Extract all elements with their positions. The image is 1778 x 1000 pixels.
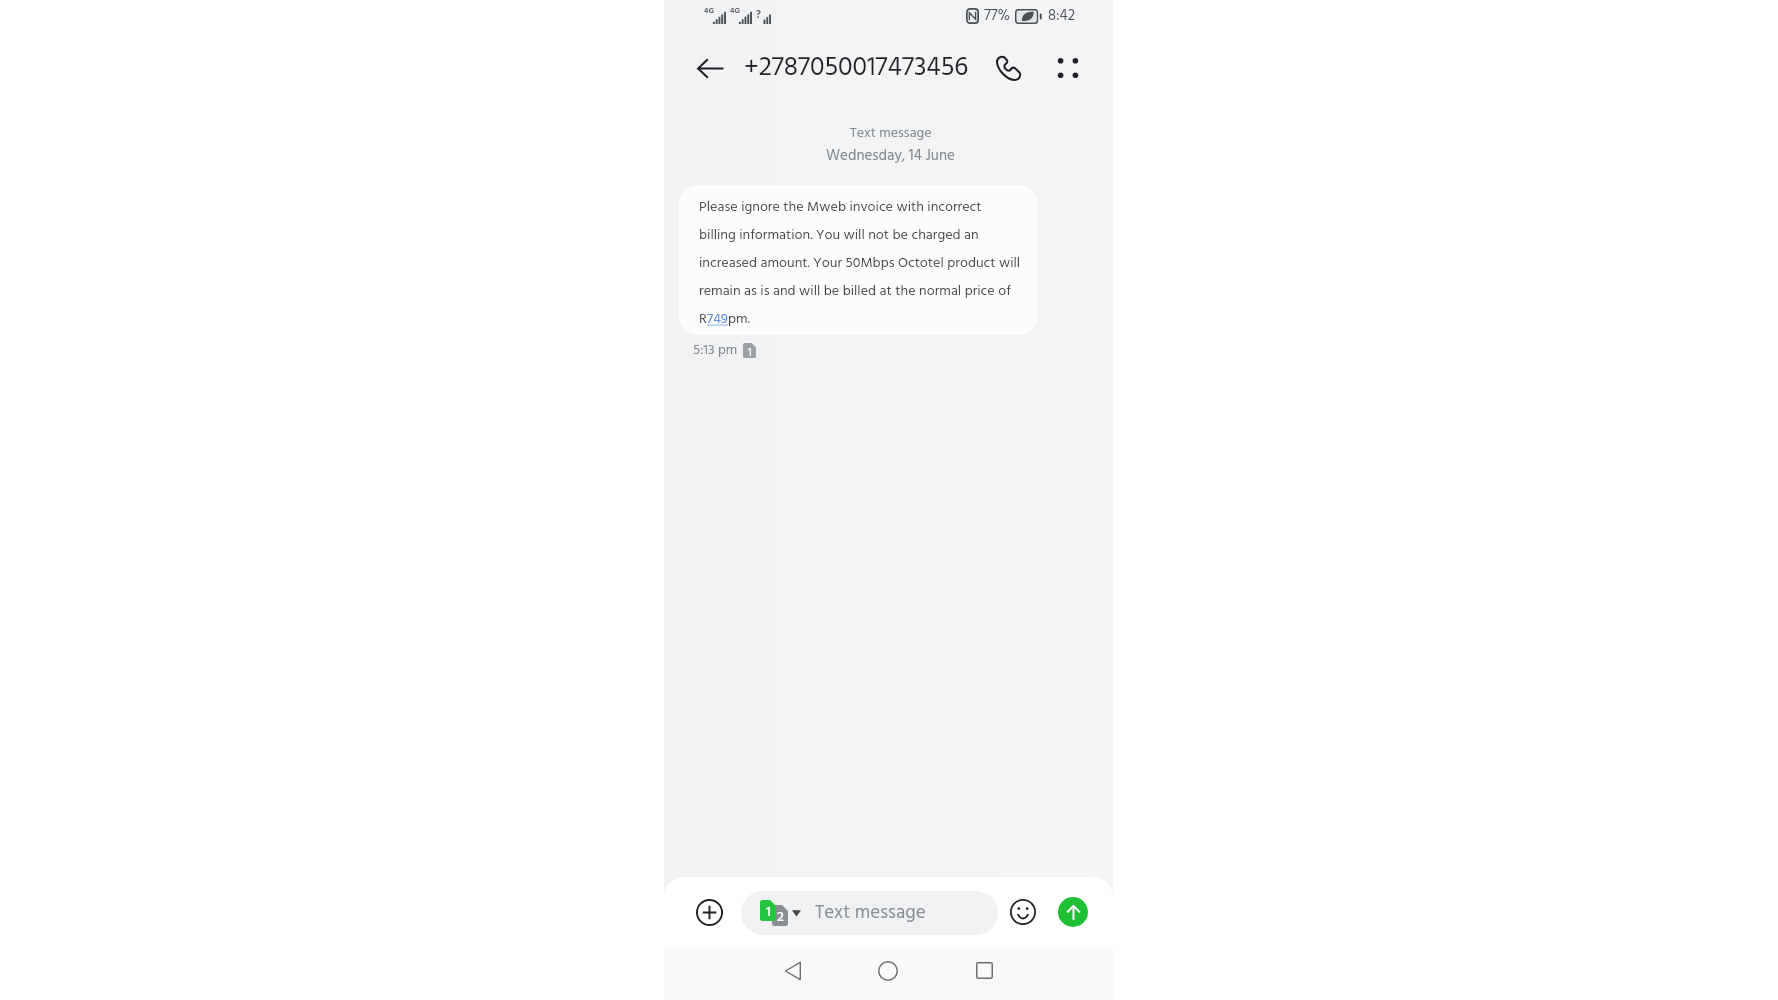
button[interactable]: Call xyxy=(984,44,1032,92)
staticText: 2 xyxy=(777,906,784,927)
button[interactable]: Emoji xyxy=(1003,892,1043,932)
staticText: Text message xyxy=(850,122,932,144)
staticText: Please ignore the Mweb invoice with inco… xyxy=(699,196,1021,331)
button[interactable]: 2 xyxy=(741,891,998,935)
staticText: 77% xyxy=(984,4,1011,28)
button[interactable]: Back xyxy=(686,44,734,92)
staticText: 5:13 pm xyxy=(693,339,738,361)
staticText: 4G xyxy=(704,5,714,18)
staticText: 8:42 xyxy=(1048,4,1076,28)
button[interactable]: Add attachment xyxy=(689,892,729,932)
staticText: Wednesday, 14 June xyxy=(826,144,955,168)
staticText: 4G xyxy=(730,5,740,18)
button[interactable]: More options xyxy=(1046,46,1090,90)
button[interactable]: Please ignore the Mweb invoice with inco… xyxy=(679,185,1038,335)
staticText: 1 xyxy=(748,344,752,359)
button[interactable]: Send xyxy=(1058,897,1088,927)
button[interactable]: Home xyxy=(858,944,918,997)
staticText: ? xyxy=(756,6,762,22)
staticText: Text message xyxy=(815,898,926,928)
button[interactable]: Recents xyxy=(954,944,1014,997)
staticText: +2787050017473456 xyxy=(744,47,969,90)
button[interactable]: Back xyxy=(762,944,822,997)
staticText: 1 xyxy=(766,901,771,922)
